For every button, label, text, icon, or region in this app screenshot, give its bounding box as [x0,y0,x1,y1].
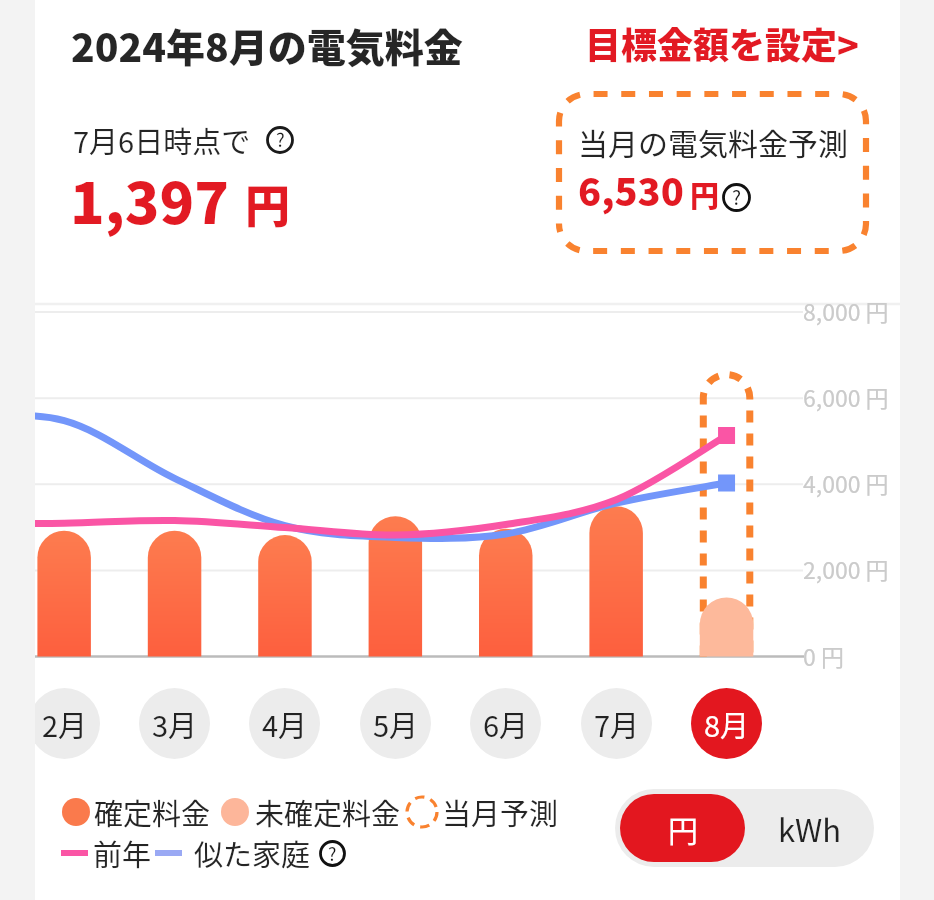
staticText: 7月 [594,703,640,745]
staticText: 目標金額を設定> [585,17,859,69]
staticText: 6,530 [578,162,684,217]
staticText: 1,397 [70,158,229,241]
staticText: ? [732,183,742,211]
button[interactable]: 目標金額を設定> [585,17,859,69]
staticText: 円 [245,171,291,236]
staticText: 8,000 円 [803,294,889,327]
staticText: 2024年8月の電気料金 [71,17,463,73]
staticText: 0 円 [803,639,844,672]
button[interactable]: 8月 [691,688,762,759]
staticText: 前年 [93,832,152,874]
staticText: 7月6日時点で [73,119,251,161]
button[interactable]: 当月の電気料金予測 [556,91,869,254]
button[interactable]: 2月 [35,688,100,759]
staticText: 4月 [262,703,308,745]
staticText: ? [276,126,285,153]
button[interactable]: ヘルプ [722,183,751,212]
button[interactable]: ヘルプ [266,126,294,154]
staticText: 円 [668,807,698,850]
staticText: 4,000 円 [803,466,889,499]
button[interactable]: 6月 [470,688,541,759]
staticText: 2月 [42,703,88,745]
staticText: 未確定料金 [255,791,401,833]
button[interactable]: kWh [745,789,874,867]
staticText: 円 [690,173,720,215]
staticText: 似た家庭 [194,832,311,874]
staticText: 当月予測 [442,791,559,833]
staticText: 5月 [373,703,419,745]
button[interactable]: 円 [620,794,745,862]
staticText: 3月 [152,703,198,745]
button[interactable]: ヘルプ [319,840,346,867]
button[interactable]: 4月 [249,688,320,759]
staticText: 6,000 円 [803,380,889,413]
staticText: 当月の電気料金予測 [578,120,848,163]
button[interactable]: 5月 [360,688,431,759]
staticText: 6月 [483,703,529,745]
staticText: kWh [778,806,842,851]
staticText: ? [328,840,337,866]
button[interactable]: 3月 [139,688,210,759]
staticText: 2,000 円 [803,552,889,585]
staticText: 8月 [704,703,750,745]
button[interactable]: 7月 [581,688,652,759]
staticText: 確定料金 [94,791,211,833]
